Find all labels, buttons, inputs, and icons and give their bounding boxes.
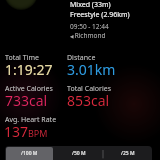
staticText: /50 M <box>72 150 86 157</box>
button[interactable]: /100 M <box>6 147 53 160</box>
staticText: Distance <box>67 53 96 63</box>
staticText: Freestyle (2.96km) <box>70 10 130 20</box>
staticText: /100 M <box>21 150 38 157</box>
staticText: 137BPM <box>4 122 48 141</box>
button[interactable]: /25 M <box>104 147 151 160</box>
staticText: Total Calories <box>67 84 112 94</box>
staticText: 853cal <box>67 91 110 110</box>
staticText: ◀ Richmond <box>70 31 106 40</box>
staticText: /25 M <box>121 150 135 157</box>
button[interactable]: /50 M <box>55 147 102 160</box>
staticText: 733cal <box>5 91 48 110</box>
staticText: 1:19:27 <box>5 60 53 79</box>
staticText: Total Time <box>5 53 39 63</box>
staticText: Active Calories <box>5 84 53 94</box>
staticText: 09:50 - 12:44 <box>70 22 109 31</box>
staticText: 3.01km <box>67 60 116 79</box>
staticText: Mixed (33m) <box>70 0 111 10</box>
staticText: Avg. Heart Rate <box>5 115 57 125</box>
